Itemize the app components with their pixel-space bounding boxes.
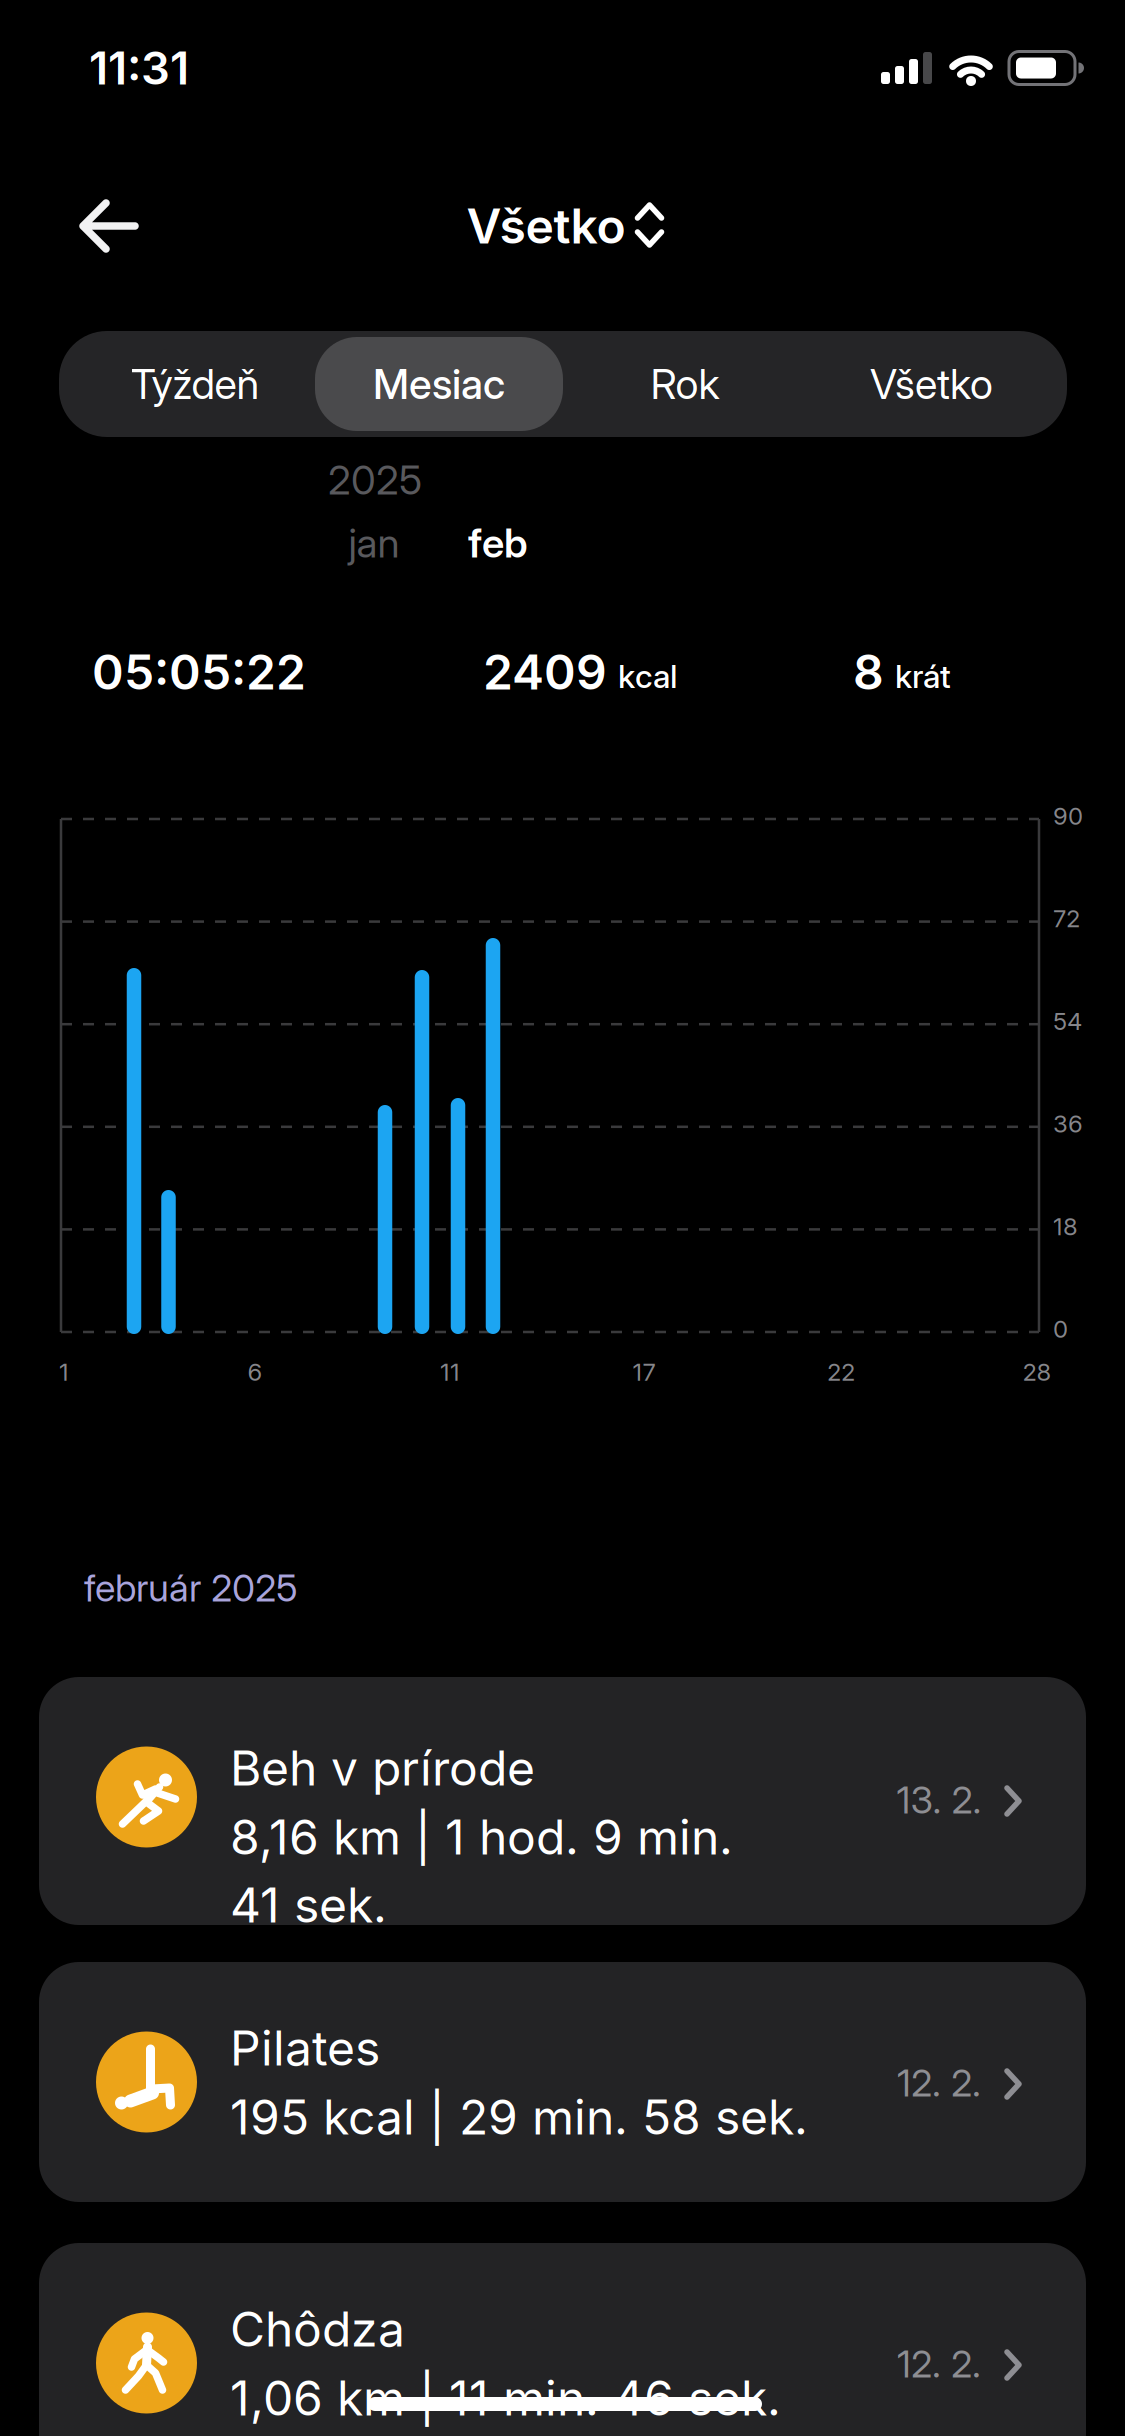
staticText: 2409 — [483, 644, 607, 700]
button[interactable]: Chôdza — [39, 2243, 1086, 2436]
staticText: 22 — [827, 1358, 855, 1386]
staticText: 1,06 km | 11 min. 46 sek. — [230, 2370, 781, 2426]
staticText: 90 — [1053, 802, 1083, 830]
staticText: Všetko — [870, 360, 993, 408]
staticText: 41 sek. — [230, 1877, 387, 1933]
staticText: jan — [348, 519, 399, 567]
staticText: 195 kcal | 29 min. 58 sek. — [230, 2089, 808, 2145]
staticText: 18 — [1053, 1212, 1078, 1240]
staticText: 12. 2. — [897, 2061, 981, 2105]
staticText: 1 — [59, 1358, 69, 1386]
staticText: Rok — [650, 360, 719, 408]
staticText: 36 — [1053, 1110, 1083, 1138]
staticText: kcal — [618, 658, 677, 695]
staticText: 17 — [632, 1358, 655, 1386]
button[interactable]: Všetko — [805, 331, 1057, 437]
staticText: 8,16 km | 1 hod. 9 min. — [230, 1809, 733, 1865]
button[interactable]: jan — [319, 511, 429, 575]
staticText: 11 — [440, 1358, 460, 1386]
staticText: 12. 2. — [897, 2342, 981, 2386]
staticText: 05:05:22 — [92, 644, 306, 700]
button[interactable]: feb — [443, 511, 553, 575]
button[interactable]: Mesiac — [313, 331, 565, 437]
staticText: 6 — [247, 1358, 262, 1386]
staticText: Chôdza — [230, 2301, 405, 2357]
staticText: Pilates — [230, 2020, 380, 2076]
staticText: 11:31 — [89, 41, 189, 95]
staticText: feb — [468, 519, 528, 567]
staticText: Mesiac — [373, 360, 505, 408]
staticText: 54 — [1053, 1007, 1082, 1035]
button[interactable]: Všetko filter — [466, 198, 665, 254]
staticText: február 2025 — [84, 1566, 298, 1610]
staticText: 72 — [1053, 904, 1080, 933]
button[interactable]: Beh v prírode — [39, 1677, 1086, 1925]
button[interactable]: Týždeň — [69, 331, 321, 437]
staticText: Beh v prírode — [230, 1740, 535, 1796]
button[interactable]: Back — [75, 196, 145, 256]
staticText: Všetko — [466, 198, 625, 254]
staticText: 0 — [1053, 1315, 1068, 1343]
button[interactable]: Pilates — [39, 1962, 1086, 2202]
button[interactable]: Rok — [559, 331, 811, 437]
staticText: Týždeň — [130, 360, 259, 408]
staticText: 2025 — [328, 456, 422, 504]
staticText: 28 — [1022, 1358, 1051, 1386]
staticText: krát — [895, 658, 951, 695]
staticText: 8 — [853, 644, 884, 700]
staticText: 13. 2. — [896, 1778, 981, 1822]
